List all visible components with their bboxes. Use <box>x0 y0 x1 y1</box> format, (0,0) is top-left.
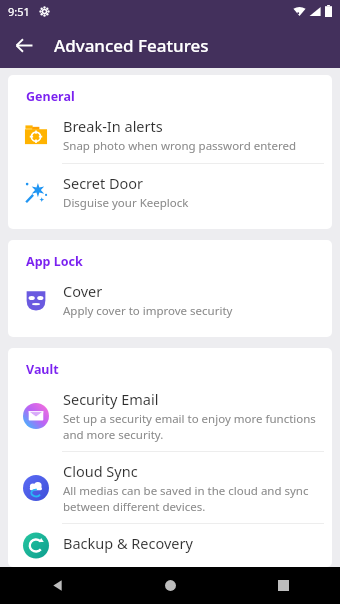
button[interactable]: Secret Door <box>8 164 332 220</box>
staticText: 9:51 <box>8 4 30 19</box>
staticText: App Lock <box>26 253 83 270</box>
button[interactable]: Backup & Recovery <box>8 524 332 567</box>
button[interactable]: Cover <box>8 272 332 328</box>
staticText: Cover <box>63 281 103 301</box>
button[interactable]: Break-In alerts <box>8 107 332 163</box>
staticText: Break-In alerts <box>63 116 163 136</box>
staticText: Security Email <box>63 389 159 409</box>
button[interactable]: Cloud Sync <box>8 452 332 523</box>
staticText: Vault <box>26 361 59 378</box>
staticText: Backup & Recovery <box>63 533 193 553</box>
staticText: Disguise your Keeplock <box>63 195 189 211</box>
button[interactable]: Recent apps <box>227 567 340 604</box>
button[interactable]: Back <box>6 27 42 63</box>
button[interactable]: Home <box>114 567 227 604</box>
staticText: Snap photo when wrong password entered <box>63 138 297 154</box>
button[interactable]: Back <box>0 567 114 604</box>
button[interactable]: Security Email <box>8 380 332 451</box>
staticText: Apply cover to improve security <box>63 303 233 319</box>
staticText: All medias can be saved in the cloud and… <box>63 483 320 514</box>
staticText: Set up a security email to enjoy more fu… <box>63 411 320 442</box>
staticText: Cloud Sync <box>63 461 138 481</box>
staticText: General <box>26 88 75 105</box>
staticText: Secret Door <box>63 173 144 193</box>
staticText: Advanced Features <box>54 34 209 57</box>
